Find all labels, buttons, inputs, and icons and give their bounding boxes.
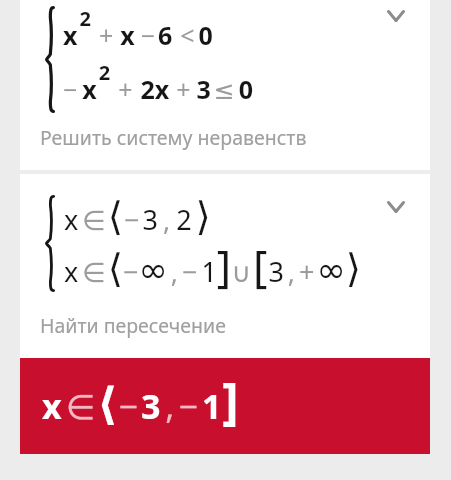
button[interactable]: x ∈ ⟨ − 3 , 2 ⟩: [20, 174, 430, 358]
other: Expand: [387, 10, 405, 22]
staticText: x 2 + x − 6 < 0: [63, 5, 213, 54]
staticText: x ∈ ⟨ − 3 , − 1 ]: [42, 366, 239, 433]
staticText: Решить систему неравенств: [40, 124, 307, 151]
button[interactable]: x 2 + x − 6 < 0: [20, 0, 430, 170]
staticText: − x 2 + 2x + 3 ≤ 0: [63, 59, 254, 108]
button[interactable]: x ∈ ⟨ − 3 , − 1 ]: [20, 358, 430, 454]
other: Expand: [387, 201, 405, 213]
staticText: x ∈ ⟨ − 3 , 2 ⟩: [64, 194, 211, 240]
staticText: Найти пересечение: [40, 312, 226, 339]
staticText: x ∈ ⟨−∞ , − 1]∪ [ 3 , + ∞⟩: [64, 235, 362, 295]
